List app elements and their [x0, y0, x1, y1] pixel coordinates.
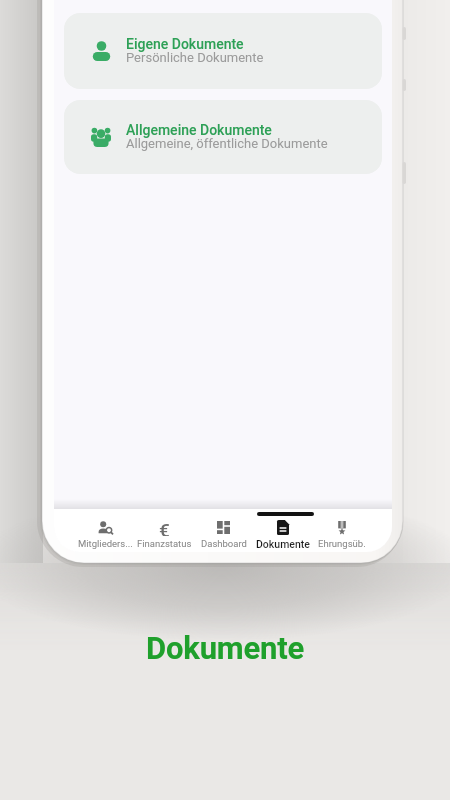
button[interactable]: Ehrungsüb.: [312, 509, 371, 552]
staticText: Eigene Dokumente: [126, 36, 244, 52]
button[interactable]: Allgemeine Dokumente: [64, 100, 382, 174]
button[interactable]: Mitglieders...: [76, 509, 135, 552]
staticText: €: [159, 519, 170, 536]
button[interactable]: €: [135, 509, 194, 552]
staticText: Allgemeine, öffentliche Dokumente: [126, 136, 328, 151]
staticText: Dokumente: [146, 630, 304, 666]
staticText: Allgemeine Dokumente: [126, 122, 272, 138]
button[interactable]: Dashboard: [194, 509, 253, 552]
staticText: Finanzstatus: [137, 538, 192, 549]
staticText: Persönliche Dokumente: [126, 50, 264, 65]
staticText: Ehrungsüb.: [318, 538, 366, 549]
staticText: Mitglieders...: [78, 538, 133, 549]
button[interactable]: Dokumente: [253, 509, 312, 552]
staticText: Dashboard: [201, 538, 247, 549]
button[interactable]: Eigene Dokumente: [64, 13, 382, 89]
staticText: Dokumente: [256, 538, 310, 550]
